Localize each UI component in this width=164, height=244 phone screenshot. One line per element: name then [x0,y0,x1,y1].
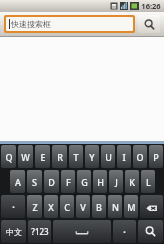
staticText: · [123,224,126,239]
button[interactable]: J [109,170,123,193]
button[interactable]: Z [27,195,42,218]
staticText: F [66,176,71,188]
staticText: X [48,201,54,213]
button[interactable]: W [18,145,33,168]
button[interactable]: S [27,170,42,193]
button[interactable]: G [77,170,91,193]
button[interactable]: Y [85,145,99,168]
button[interactable]: D [44,170,59,193]
staticText: H [97,176,104,188]
staticText: B [96,201,102,213]
staticText: 中文 [6,227,22,237]
button[interactable]: V [76,195,90,218]
staticText: M [127,201,136,213]
staticText: K [129,176,135,188]
staticText: U [105,151,112,163]
button[interactable]: T [69,145,83,168]
button[interactable]: Delete [140,195,163,218]
button[interactable]: I [117,145,131,168]
staticText: J [115,176,118,188]
button[interactable]: Search [138,15,160,33]
button[interactable]: 快速搜索框 [6,17,133,31]
staticText: L [146,176,151,188]
staticText: 16:26 [141,1,161,11]
staticText: T [73,151,79,163]
button[interactable]: · [1,195,25,218]
staticText: Z [32,201,38,213]
staticText: Q [5,151,13,163]
button[interactable]: M [124,195,138,218]
staticText: A [15,176,21,188]
button[interactable]: H [93,170,107,193]
staticText: 快速搜索框 [11,19,51,29]
staticText: I [122,151,126,163]
staticText: O [136,151,144,163]
staticText: V [80,201,86,213]
button[interactable]: K [125,170,139,193]
button[interactable]: N [108,195,122,218]
staticText: N [112,201,119,213]
staticText: G [81,176,88,188]
staticText: P [153,151,159,163]
button[interactable]: C [60,195,74,218]
button[interactable]: ?123 [28,220,51,243]
staticText: ?123 [31,226,49,237]
button[interactable]: Space [53,220,111,243]
button[interactable]: · [113,220,136,243]
staticText: D [48,176,55,188]
button[interactable]: B [92,195,106,218]
button[interactable]: 中文 [1,220,26,243]
button[interactable]: Q [1,145,16,168]
staticText: R [57,151,63,163]
staticText: Y [89,151,95,163]
button[interactable]: P [149,145,163,168]
button[interactable]: X [44,195,58,218]
button[interactable]: E [35,145,50,168]
button[interactable]: O [133,145,147,168]
staticText: · [12,199,15,214]
staticText: C [64,201,70,213]
staticText: S [32,176,37,188]
button[interactable]: Search [138,220,163,243]
staticText: W [21,151,30,163]
button[interactable]: F [61,170,75,193]
button[interactable]: U [101,145,115,168]
button[interactable]: A [10,170,25,193]
button[interactable]: L [141,170,155,193]
button[interactable]: R [52,145,67,168]
staticText: E [40,151,46,163]
